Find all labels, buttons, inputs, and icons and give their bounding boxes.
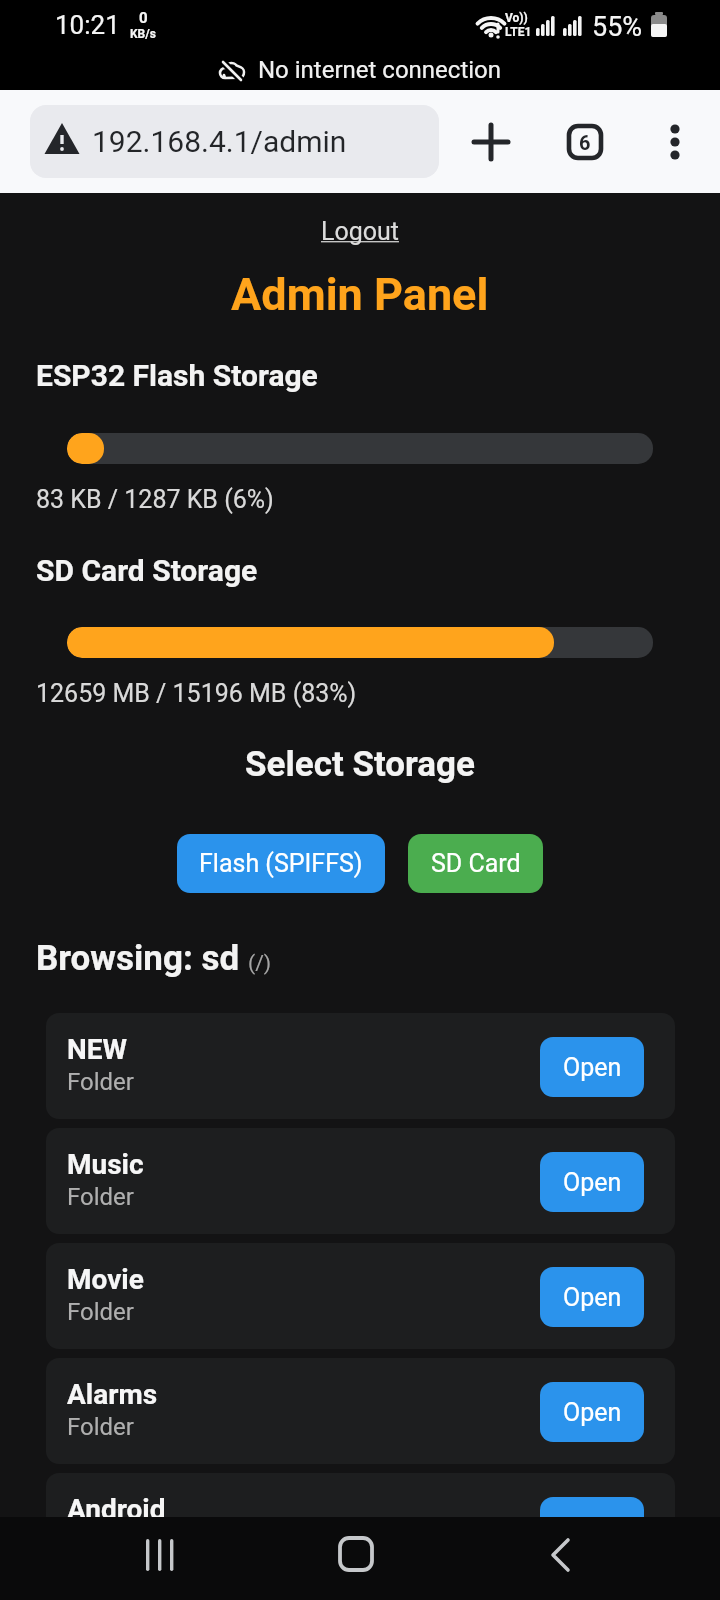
staticText: 12659 MB / 15196 MB (83%) <box>36 679 357 708</box>
staticText: SD Card <box>431 849 521 878</box>
button[interactable] <box>118 1517 198 1600</box>
button[interactable] <box>461 112 521 172</box>
staticText: KB/s <box>130 27 156 41</box>
staticText: Open <box>563 1168 622 1197</box>
staticText: Flash (SPIFFS) <box>199 849 363 878</box>
button[interactable]: Open <box>540 1497 644 1557</box>
staticText: Open <box>563 1283 622 1312</box>
staticText: NEW <box>67 1033 128 1066</box>
staticText: 192.168.4.1/admin <box>92 124 347 159</box>
staticText: Folder <box>67 1298 134 1326</box>
button[interactable]: 192.168.4.1/admin <box>30 105 439 178</box>
staticText: Music <box>67 1148 144 1181</box>
staticText: 83 KB / 1287 KB (6%) <box>36 485 274 514</box>
staticText: Open <box>563 1513 622 1542</box>
button[interactable] <box>650 112 700 172</box>
staticText: Android <box>67 1493 166 1526</box>
staticText: Select Storage <box>245 744 476 785</box>
staticText: Folder <box>67 1183 134 1211</box>
staticText: 6 <box>579 131 591 154</box>
staticText: Folder <box>67 1413 134 1441</box>
staticText: Alarms <box>67 1378 158 1411</box>
staticText: Browsing: sd (/) <box>36 938 272 979</box>
staticText: Folder <box>67 1068 134 1096</box>
staticText: Movie <box>67 1263 144 1296</box>
staticText: Open <box>563 1053 622 1082</box>
staticText: LTE1 <box>505 25 532 39</box>
staticText: SD Card Storage <box>36 553 258 588</box>
button[interactable]: Logout <box>321 217 399 246</box>
button[interactable]: Open <box>540 1037 644 1097</box>
staticText: 0 <box>139 9 148 27</box>
button[interactable]: Open <box>540 1152 644 1212</box>
button[interactable]: 6 <box>555 112 615 172</box>
button[interactable]: SD Card <box>408 834 543 893</box>
button[interactable]: Open <box>540 1267 644 1327</box>
button[interactable] <box>316 1517 396 1600</box>
staticText: Vo)) <box>505 11 528 25</box>
staticText: Open <box>563 1398 622 1427</box>
button[interactable]: Open <box>540 1382 644 1442</box>
staticText: Admin Panel <box>231 268 489 321</box>
button[interactable]: Flash (SPIFFS) <box>177 834 385 893</box>
staticText: ESP32 Flash Storage <box>36 358 318 393</box>
staticText: 10:21 <box>55 10 120 40</box>
staticText: No internet connection <box>258 56 502 84</box>
button[interactable] <box>520 1517 600 1600</box>
staticText: 55% <box>592 11 643 43</box>
